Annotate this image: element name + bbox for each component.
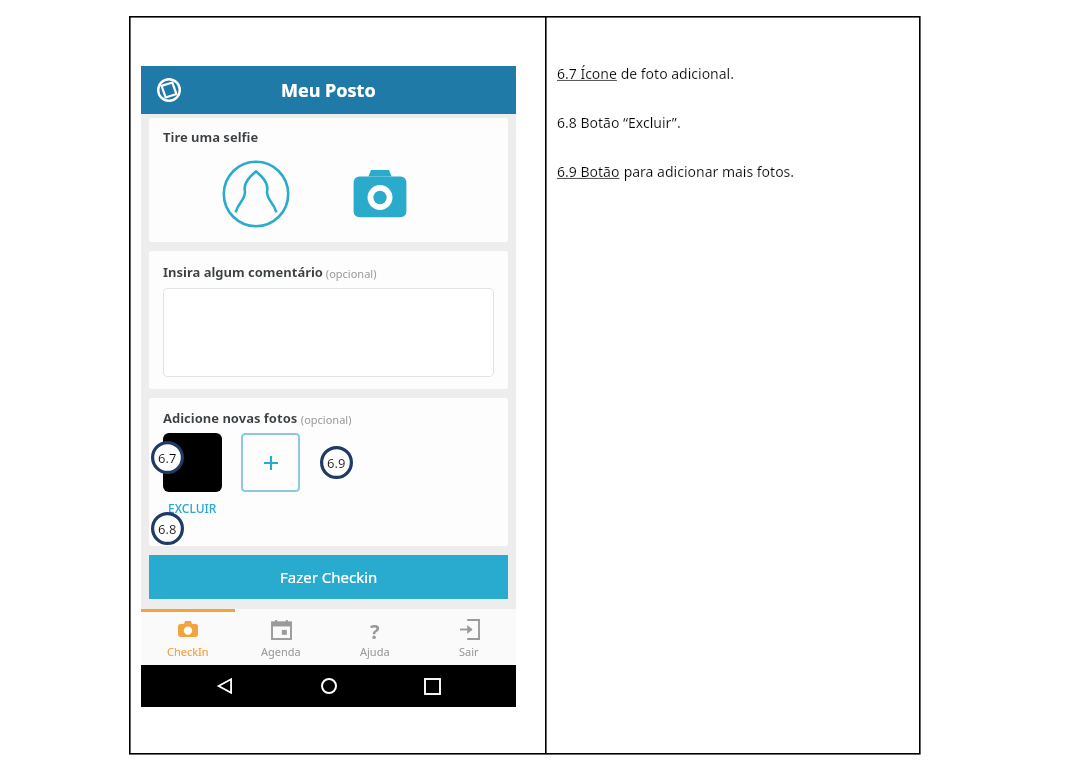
staticText: (opcional) <box>298 412 352 427</box>
staticText: Fazer Checkin <box>280 567 378 587</box>
staticText: 6.8 <box>158 520 177 538</box>
button[interactable]: Home <box>310 667 348 705</box>
staticText: para adicionar mais fotos. <box>620 162 795 181</box>
staticText: 6.7 Ícone <box>557 64 617 83</box>
staticText: 6.7 <box>158 449 177 467</box>
button[interactable]: Foto <box>163 433 222 492</box>
button[interactable]: Selfie preview <box>220 158 292 230</box>
button[interactable]: EXCLUIR <box>166 500 219 516</box>
staticText: (opcional) <box>323 266 377 281</box>
staticText: ? <box>370 618 380 640</box>
staticText: Sair <box>459 644 479 659</box>
button[interactable]: CheckIn <box>141 609 234 665</box>
staticText: Meu Posto <box>281 78 376 103</box>
button[interactable]: Fazer Checkin <box>149 555 508 599</box>
button[interactable]: Tirar foto <box>349 163 411 225</box>
staticText: Insira algum comentário <box>163 263 323 281</box>
staticText: Ajuda <box>360 644 390 659</box>
button[interactable]: Recents <box>413 667 451 705</box>
button[interactable] <box>163 288 494 377</box>
staticText: EXCLUIR <box>168 500 217 516</box>
staticText: de foto adicional. <box>617 64 734 83</box>
staticText: 6.9 <box>327 454 346 472</box>
button[interactable]: Agenda <box>234 609 328 665</box>
button[interactable]: Menu <box>155 76 183 104</box>
staticText: 6.8 Botão “Excluir”. <box>557 113 681 132</box>
staticText: Agenda <box>261 644 301 659</box>
button[interactable]: Sair <box>422 609 516 665</box>
staticText: 6.9 Botão <box>557 162 620 181</box>
staticText: CheckIn <box>167 644 209 659</box>
button[interactable]: Back <box>206 667 244 705</box>
staticText: Tire uma selfie <box>163 128 259 146</box>
button[interactable]: ? <box>328 609 422 665</box>
staticText: Adicione novas fotos <box>163 409 298 427</box>
button[interactable]: Adicionar foto <box>241 433 300 492</box>
